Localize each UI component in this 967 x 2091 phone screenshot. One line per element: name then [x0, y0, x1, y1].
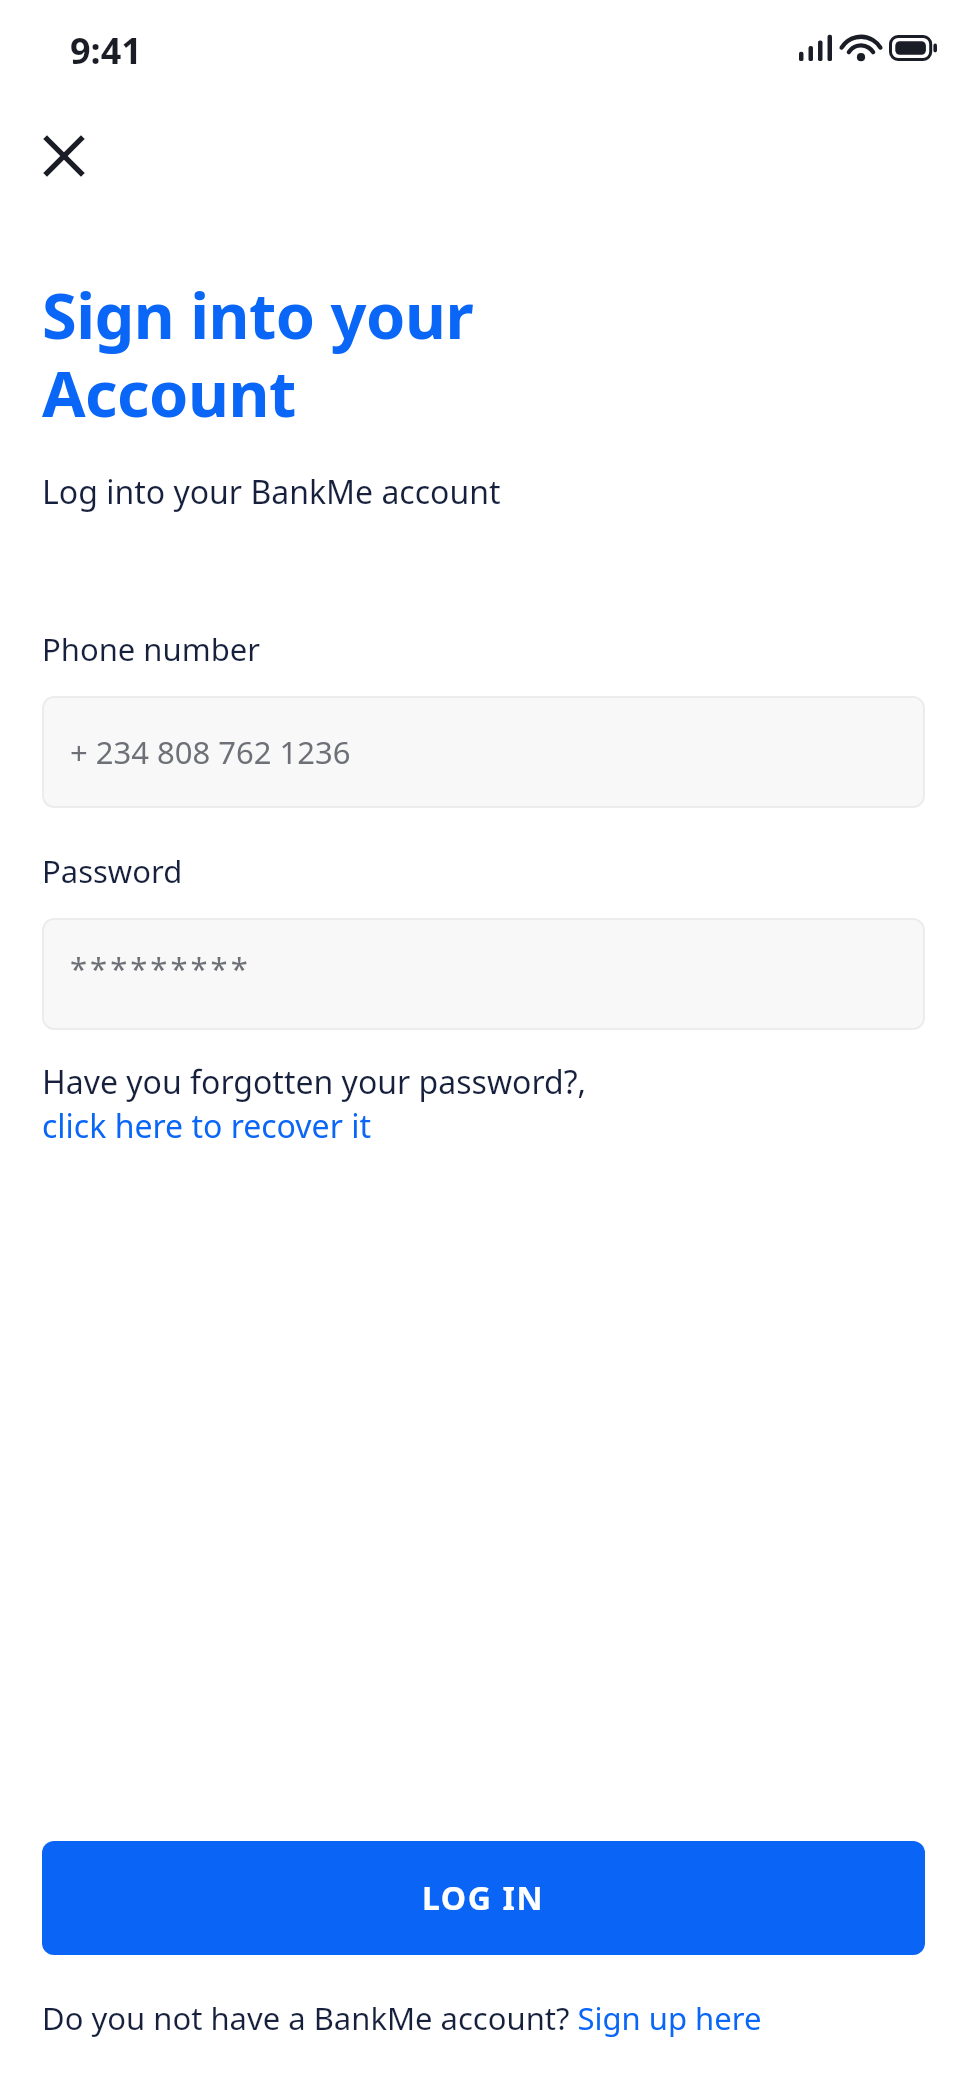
button[interactable]: Close: [28, 120, 100, 192]
button[interactable]: LOG IN: [42, 1841, 925, 1955]
staticText: LOG IN: [422, 1876, 545, 1920]
staticText: Phone number: [42, 628, 261, 670]
button[interactable]: Have you forgotten your password?,: [42, 1060, 587, 1148]
staticText: Sign into your Account: [42, 272, 474, 436]
button[interactable]: Do you not have a BankMe account? Sign u…: [42, 1997, 762, 2039]
staticText: Log into your BankMe account: [42, 470, 501, 514]
staticText: + 234 808 762 1236: [70, 731, 351, 773]
staticText: click here to recover it: [42, 1104, 371, 1148]
staticText: 9:41: [70, 26, 142, 75]
button[interactable]: + 234 808 762 1236: [42, 696, 925, 808]
staticText: Password: [42, 850, 183, 892]
button[interactable]: *********: [42, 918, 925, 1030]
staticText: *********: [70, 947, 251, 989]
staticText: Have you forgotten your password?,: [42, 1060, 587, 1104]
